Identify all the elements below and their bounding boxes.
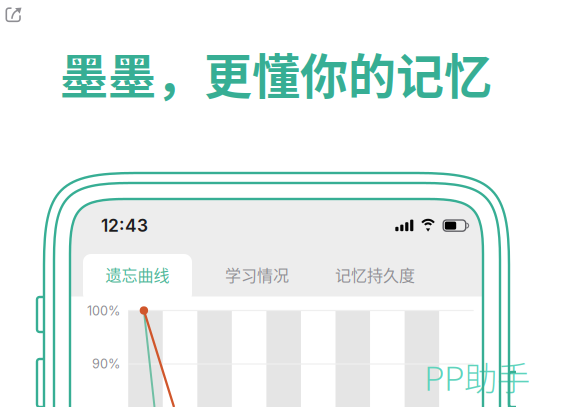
staticText: 记忆持久度 [335, 263, 415, 286]
button[interactable]: 学习情况 [207, 253, 307, 296]
button[interactable]: 记忆持久度 [320, 253, 430, 296]
staticText: 学习情况 [225, 263, 289, 286]
staticText: 12:43 [101, 215, 148, 236]
staticText: 100% [87, 303, 120, 319]
staticText: 遗忘曲线 [105, 263, 169, 286]
staticText: 90% [92, 356, 120, 372]
staticText: PP助手 [424, 352, 530, 400]
button[interactable]: Share [0, 0, 42, 43]
button[interactable]: 遗忘曲线 [83, 253, 192, 296]
staticText: 墨墨，更懂你的记忆 [60, 38, 492, 108]
